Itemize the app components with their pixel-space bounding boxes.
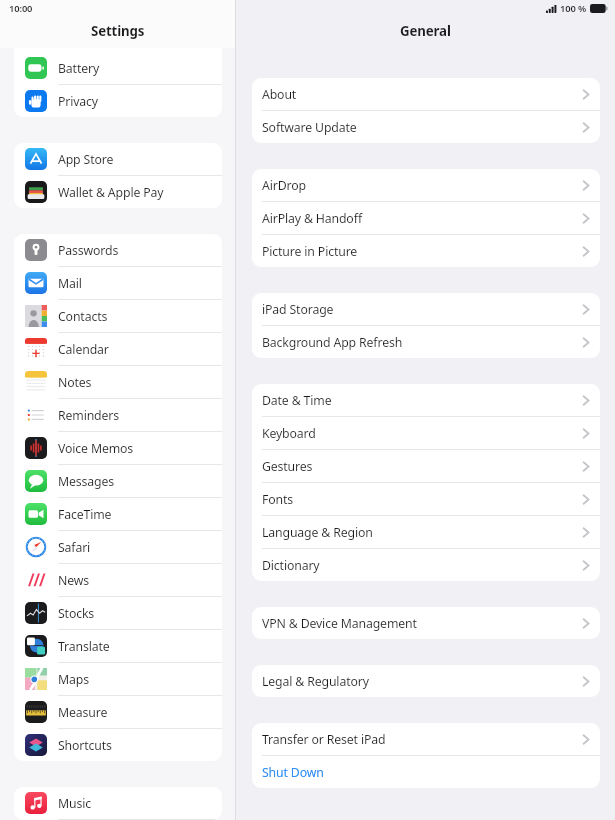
staticText: About — [262, 86, 297, 103]
button[interactable]: News — [14, 564, 222, 596]
button[interactable]: Mail — [14, 267, 222, 299]
button[interactable]: Background App Refresh — [252, 326, 600, 358]
button[interactable]: FaceTime — [14, 498, 222, 530]
button[interactable]: About — [252, 78, 600, 110]
staticText: Dictionary — [262, 557, 320, 574]
staticText: Wallet & Apple Pay — [58, 184, 164, 201]
staticText: Stocks — [58, 605, 95, 622]
staticText: Privacy — [58, 93, 98, 110]
button[interactable]: Reminders — [14, 399, 222, 431]
button[interactable]: Date & Time — [252, 384, 600, 416]
button[interactable]: Shut Down — [252, 756, 600, 788]
button[interactable]: Transfer or Reset iPad — [252, 723, 600, 755]
staticText: Language & Region — [262, 524, 373, 541]
staticText: VPN & Device Management — [262, 615, 417, 632]
staticText: AirPlay & Handoff — [262, 210, 362, 227]
staticText: Passwords — [58, 242, 119, 259]
staticText: FaceTime — [58, 506, 112, 523]
button[interactable]: AirDrop — [252, 169, 600, 201]
staticText: Software Update — [262, 119, 357, 136]
staticText: Translate — [58, 638, 110, 655]
button[interactable]: Picture in Picture — [252, 235, 600, 267]
button[interactable]: AirPlay & Handoff — [252, 202, 600, 234]
button[interactable]: Calendar — [14, 333, 222, 365]
button[interactable]: Voice Memos — [14, 432, 222, 464]
staticText: Fonts — [262, 491, 294, 508]
staticText: Keyboard — [262, 425, 316, 442]
button[interactable]: Gestures — [252, 450, 600, 482]
button[interactable]: VPN & Device Management — [252, 607, 600, 639]
staticText: Safari — [58, 539, 91, 556]
button[interactable]: Contacts — [14, 300, 222, 332]
staticText: Gestures — [262, 458, 313, 475]
staticText: Reminders — [58, 407, 119, 424]
staticText: iPad Storage — [262, 301, 334, 318]
button[interactable]: Maps — [14, 663, 222, 695]
staticText: Messages — [58, 473, 114, 490]
button[interactable]: Legal & Regulatory — [252, 665, 600, 697]
button[interactable]: Notes — [14, 366, 222, 398]
button[interactable]: Measure — [14, 696, 222, 728]
button[interactable]: Passwords — [14, 234, 222, 266]
staticText: General — [400, 22, 451, 40]
staticText: Picture in Picture — [262, 243, 358, 260]
staticText: Voice Memos — [58, 440, 134, 457]
staticText: Legal & Regulatory — [262, 673, 369, 690]
staticText: Shut Down — [262, 764, 324, 781]
button[interactable]: Privacy — [14, 85, 222, 117]
button[interactable]: Stocks — [14, 597, 222, 629]
staticText: Mail — [58, 275, 82, 292]
button[interactable]: Language & Region — [252, 516, 600, 548]
button[interactable]: Messages — [14, 465, 222, 497]
staticText: Transfer or Reset iPad — [262, 731, 386, 748]
button[interactable]: Wallet & Apple Pay — [14, 176, 222, 208]
staticText: 10:00 — [9, 2, 33, 15]
staticText: Date & Time — [262, 392, 332, 409]
button[interactable]: Dictionary — [252, 549, 600, 581]
button[interactable]: Fonts — [252, 483, 600, 515]
button[interactable]: Software Update — [252, 111, 600, 143]
button[interactable]: Shortcuts — [14, 729, 222, 761]
staticText: Shortcuts — [58, 737, 112, 754]
staticText: Settings — [91, 22, 145, 40]
button[interactable]: Keyboard — [252, 417, 600, 449]
staticText: News — [58, 572, 89, 589]
staticText: Notes — [58, 374, 92, 391]
button[interactable]: Translate — [14, 630, 222, 662]
staticText: Calendar — [58, 341, 109, 358]
staticText: Measure — [58, 704, 108, 721]
staticText: 100 % — [560, 2, 587, 15]
button[interactable]: Battery — [14, 52, 222, 84]
staticText: Background App Refresh — [262, 334, 403, 351]
staticText: Battery — [58, 60, 100, 77]
staticText: Contacts — [58, 308, 108, 325]
staticText: App Store — [58, 151, 114, 168]
button[interactable]: Music — [14, 787, 222, 819]
button[interactable]: Safari — [14, 531, 222, 563]
button[interactable]: App Store — [14, 143, 222, 175]
button[interactable]: iPad Storage — [252, 293, 600, 325]
staticText: Music — [58, 795, 91, 812]
staticText: Maps — [58, 671, 89, 688]
staticText: AirDrop — [262, 177, 306, 194]
